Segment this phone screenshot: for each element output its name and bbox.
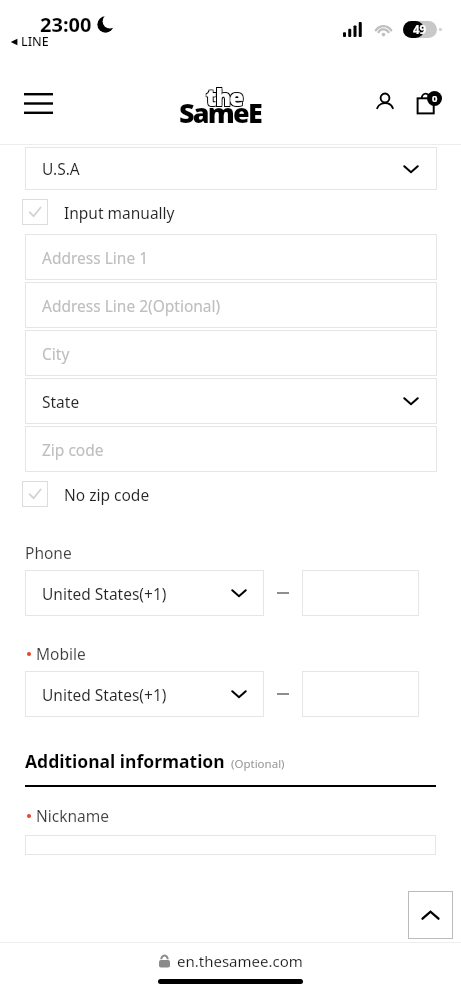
- staticText: Additional information: [25, 749, 225, 773]
- staticText: LINE: [21, 33, 49, 50]
- staticText: en.thesamee.com: [177, 951, 303, 971]
- staticText: the: [207, 82, 244, 113]
- button[interactable]: U.S.A: [25, 147, 437, 190]
- button[interactable]: Input manually: [22, 199, 175, 225]
- staticText: 23:00: [40, 11, 92, 38]
- staticText: the: [205, 80, 242, 111]
- staticText: United States(+1): [42, 583, 167, 604]
- staticText: No zip code: [64, 484, 150, 505]
- staticText: Zip code: [42, 439, 104, 460]
- button[interactable]: No zip code: [22, 481, 150, 507]
- staticText: Phone: [25, 542, 72, 563]
- button[interactable]: [302, 570, 419, 616]
- button[interactable]: theSameE home: [179, 81, 287, 125]
- button[interactable]: [302, 671, 419, 717]
- staticText: Nickname: [36, 805, 110, 826]
- button[interactable]: United States(+1): [25, 570, 264, 616]
- staticText: Input manually: [64, 202, 175, 223]
- staticText: Mobile: [36, 643, 86, 664]
- staticText: (Optional): [231, 756, 285, 772]
- button[interactable]: Address Line 1: [25, 234, 437, 280]
- staticText: 49: [413, 22, 427, 38]
- button[interactable]: Scroll to top: [408, 891, 453, 939]
- button[interactable]: Account: [365, 83, 405, 123]
- staticText: United States(+1): [42, 684, 167, 705]
- staticText: the: [206, 81, 243, 112]
- staticText: the: [206, 81, 243, 112]
- button[interactable]: State: [25, 378, 437, 424]
- button[interactable]: City: [25, 330, 437, 376]
- staticText: the: [207, 80, 244, 111]
- button[interactable]: Zip code: [25, 426, 437, 472]
- staticText: Address Line 2(Optional): [42, 295, 221, 316]
- staticText: City: [42, 343, 70, 364]
- staticText: 0: [432, 92, 438, 105]
- staticText: State: [42, 391, 80, 412]
- staticText: SameE: [179, 94, 261, 131]
- button[interactable]: Cart, 0 items: [407, 82, 449, 124]
- button[interactable]: Address Line 2(Optional): [25, 282, 437, 328]
- button[interactable]: Menu: [14, 79, 62, 127]
- staticText: the: [205, 82, 242, 113]
- staticText: Address Line 1: [42, 247, 149, 268]
- staticText: U.S.A: [42, 158, 80, 179]
- button[interactable]: United States(+1): [25, 671, 264, 717]
